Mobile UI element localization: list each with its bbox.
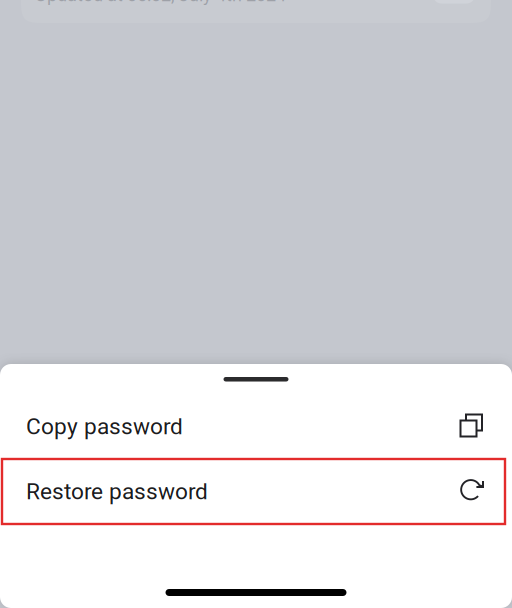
staticText: Updated at 05:02, July 4th 2024	[35, 0, 286, 6]
button[interactable]: Restore password	[0, 459, 512, 524]
button[interactable]: Copy password	[0, 394, 512, 459]
staticText: Restore password	[26, 478, 208, 505]
staticText: Copy password	[26, 413, 183, 440]
